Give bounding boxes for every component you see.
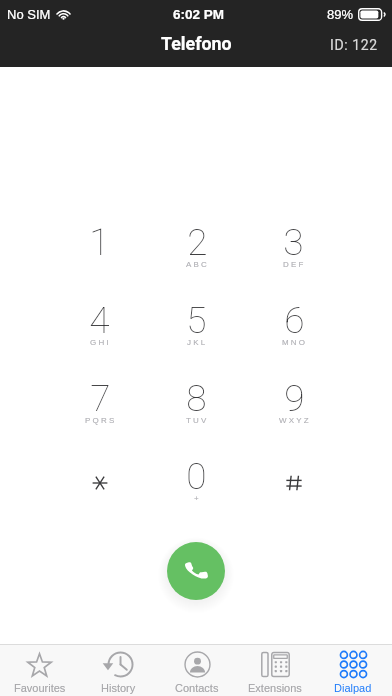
staticText: TUV (186, 416, 209, 425)
button[interactable]: 3 (245, 221, 342, 299)
staticText: 8 (186, 377, 207, 420)
staticText: Dialpad (334, 682, 372, 694)
staticText: GHI (90, 338, 111, 347)
button[interactable]: Dialpad (314, 645, 392, 696)
staticText: 6:02 PM (173, 7, 225, 22)
staticText: WXYZ (279, 416, 311, 425)
staticText: ID: 122 (330, 37, 378, 53)
staticText: Favourites (14, 682, 66, 694)
button[interactable]: 2 (148, 221, 245, 299)
button[interactable]: 6 (245, 299, 342, 377)
staticText: 89% (327, 7, 354, 22)
button[interactable]: 8 (148, 377, 245, 455)
staticText: 1 (89, 221, 110, 264)
staticText: 7 (90, 377, 111, 420)
staticText: 5 (186, 299, 207, 342)
button[interactable]: Call (167, 542, 225, 600)
staticText: 3 (283, 221, 304, 264)
staticText: 4 (89, 299, 110, 342)
staticText: 2 (187, 221, 208, 264)
staticText: Contacts (175, 682, 219, 694)
staticText: Extensions (248, 682, 302, 694)
button[interactable]: 0 (148, 455, 245, 533)
staticText: Telefono (161, 33, 232, 54)
button[interactable]: 9 (245, 377, 342, 455)
button[interactable]: 7 (51, 377, 148, 455)
staticText: JKL (187, 338, 208, 347)
button[interactable]: hash (245, 455, 342, 533)
staticText: + (194, 494, 201, 503)
staticText: DEF (283, 260, 306, 269)
staticText: 0 (186, 455, 207, 498)
staticText: 6 (284, 299, 305, 342)
staticText: 9 (284, 377, 305, 420)
staticText: MNO (282, 338, 308, 347)
button[interactable]: 4 (51, 299, 148, 377)
staticText: No SIM (7, 7, 51, 22)
button[interactable]: Favourites (0, 645, 79, 696)
staticText: PQRS (85, 416, 117, 425)
button[interactable]: Contacts (158, 645, 236, 696)
button[interactable]: star (51, 455, 148, 533)
staticText: History (101, 682, 136, 694)
button[interactable]: History (79, 645, 158, 696)
button[interactable]: 1 (51, 221, 148, 299)
staticText: ABC (186, 260, 210, 269)
button[interactable]: Extensions (236, 645, 314, 696)
button[interactable]: 5 (148, 299, 245, 377)
